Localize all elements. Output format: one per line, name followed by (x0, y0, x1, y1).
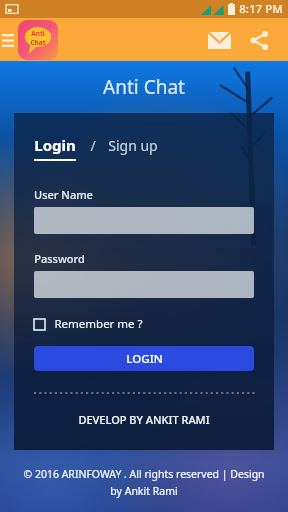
staticText: User Name (34, 187, 93, 202)
button[interactable]: LOGIN (34, 346, 254, 371)
button[interactable]: Sign up (108, 136, 158, 155)
button[interactable]: Messages (202, 23, 236, 57)
button[interactable] (34, 271, 254, 298)
staticText: LOGIN (126, 351, 163, 367)
staticText: Remember me ? (54, 316, 143, 332)
staticText: by Ankit Rami (110, 484, 178, 498)
staticText: DEVELOP BY ANKIT RAMI (78, 412, 210, 427)
staticText: Login (34, 135, 76, 155)
staticText: Sign up (108, 136, 158, 155)
button[interactable]: Share (242, 23, 276, 57)
button[interactable]: Anti Chat logo (18, 20, 58, 60)
staticText: / (90, 136, 96, 155)
staticText: Chat (30, 38, 46, 47)
button[interactable] (34, 207, 254, 234)
staticText: Anti Chat (103, 74, 185, 100)
staticText: 8:17 PM (239, 1, 283, 17)
staticText: © 2016 ARINFOWAY . All rights reserved |… (23, 467, 265, 481)
button[interactable]: Remember me ? (34, 316, 143, 332)
staticText: Anti (31, 29, 45, 38)
button[interactable]: Menu (0, 25, 16, 55)
button[interactable]: Login (34, 135, 76, 161)
staticText: Password (34, 251, 85, 266)
